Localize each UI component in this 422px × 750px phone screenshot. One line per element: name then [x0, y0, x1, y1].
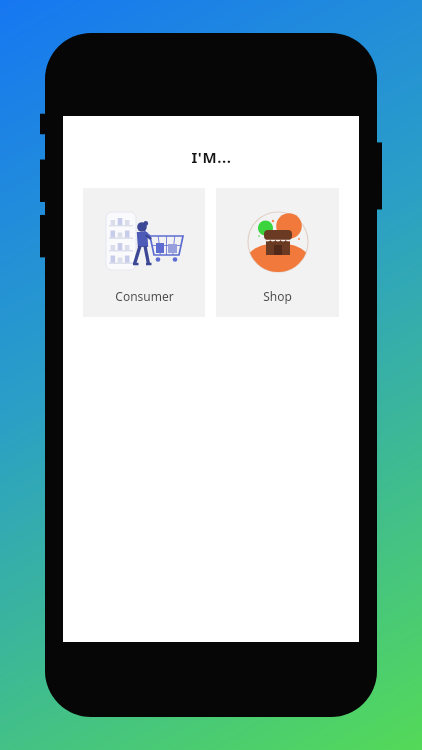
button[interactable]: Shop illustration — [216, 188, 339, 317]
staticText: Consumer — [115, 288, 174, 304]
button[interactable]: Consumer illustration — [83, 188, 205, 317]
staticText: I'M... — [191, 147, 232, 167]
staticText: Shop — [263, 288, 292, 304]
other: Shop illustration — [240, 204, 316, 280]
other: Consumer illustration — [100, 204, 188, 280]
